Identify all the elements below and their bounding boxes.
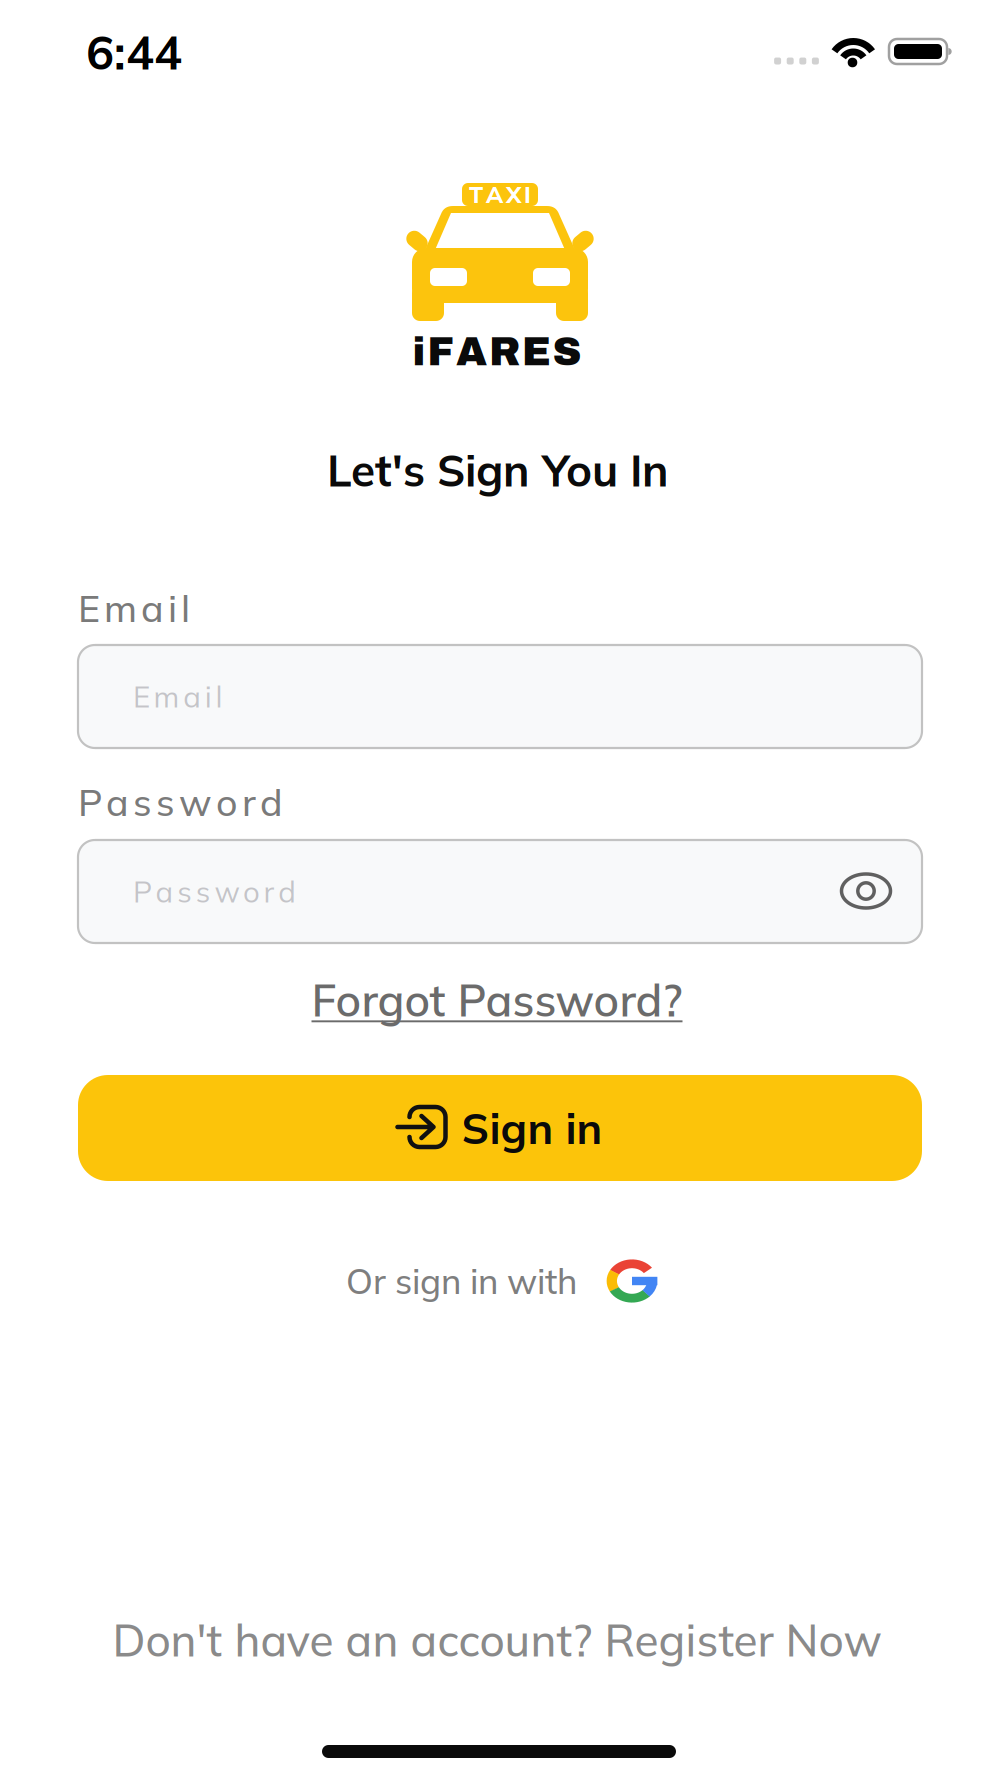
staticText: i: [412, 330, 425, 374]
staticText: d: [278, 873, 296, 910]
staticText: Or sign in with: [346, 1259, 577, 1303]
button[interactable]: Sign in: [78, 1075, 922, 1181]
staticText: A: [456, 330, 487, 374]
staticText: s: [196, 873, 211, 910]
staticText: P: [133, 873, 152, 910]
staticText: S: [552, 330, 581, 374]
staticText: a: [183, 678, 201, 715]
staticText: F: [427, 330, 454, 374]
staticText: i: [205, 678, 212, 715]
staticText: R: [489, 330, 520, 374]
staticText: a: [141, 585, 164, 631]
staticText: Sign in: [461, 1101, 602, 1155]
staticText: Let's Sign You In: [327, 442, 669, 498]
staticText: E: [133, 678, 150, 715]
staticText: E: [522, 330, 551, 374]
button[interactable]: E: [78, 645, 922, 748]
staticText: w: [214, 873, 239, 910]
staticText: i: [168, 585, 177, 631]
staticText: m: [104, 585, 137, 631]
staticText: P: [78, 779, 102, 825]
staticText: l: [215, 678, 222, 715]
staticText: m: [154, 678, 180, 715]
button[interactable]: Forgot Password?: [311, 972, 682, 1028]
staticText: I: [524, 180, 531, 209]
staticText: o: [243, 873, 260, 910]
staticText: o: [216, 779, 238, 825]
button[interactable]: Show password: [836, 869, 896, 913]
button[interactable]: Don't have an account? Register Now: [112, 1612, 881, 1668]
staticText: T: [469, 180, 483, 209]
staticText: l: [181, 585, 190, 631]
staticText: Forgot Password?: [311, 972, 682, 1028]
staticText: s: [156, 779, 175, 825]
staticText: r: [264, 873, 275, 910]
staticText: X: [506, 180, 521, 209]
staticText: A: [486, 180, 503, 209]
staticText: s: [177, 873, 192, 910]
button[interactable]: Sign in with Google: [610, 1259, 654, 1303]
staticText: Don't have an account? Register Now: [112, 1612, 881, 1668]
staticText: 6:44: [86, 23, 182, 81]
button[interactable]: P: [78, 840, 922, 943]
staticText: w: [179, 779, 212, 825]
staticText: s: [133, 779, 152, 825]
staticText: r: [242, 779, 256, 825]
staticText: d: [260, 779, 283, 825]
staticText: a: [156, 873, 174, 910]
staticText: a: [106, 779, 129, 825]
staticText: E: [78, 585, 100, 631]
